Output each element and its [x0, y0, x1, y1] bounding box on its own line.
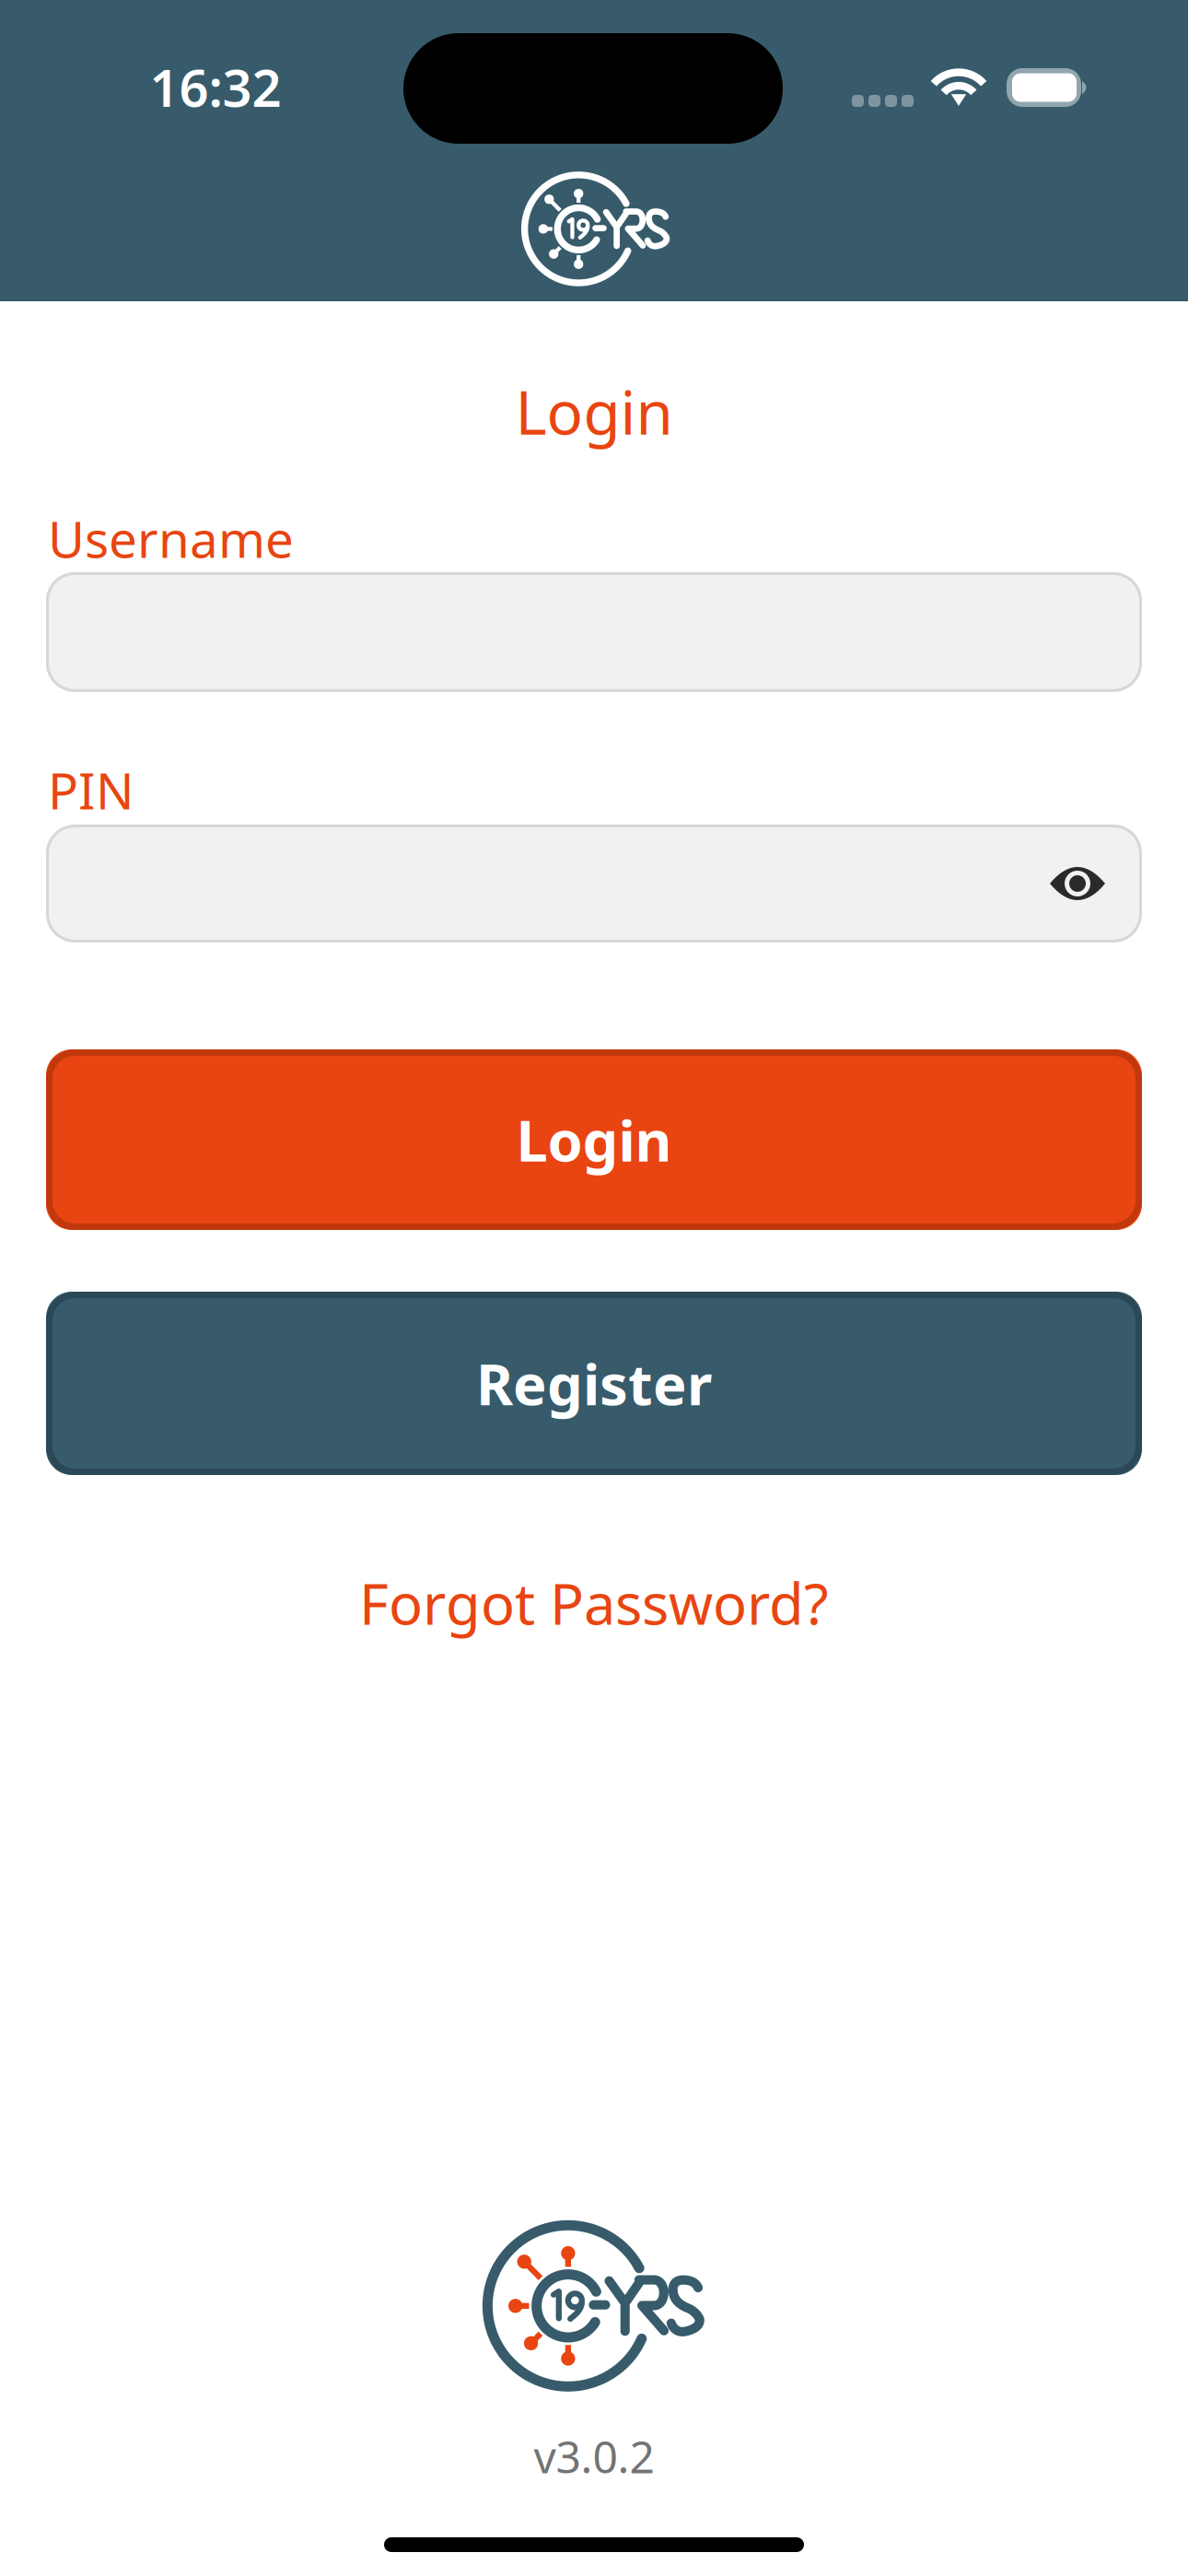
staticText: Register: [476, 1346, 712, 1421]
staticText: PIN: [48, 756, 134, 823]
staticText: Login: [516, 1102, 672, 1177]
staticText: Username: [48, 505, 294, 572]
staticText: Login: [515, 371, 673, 451]
button[interactable]: Register: [46, 1292, 1142, 1475]
button[interactable]: Login: [46, 1049, 1142, 1230]
staticText: 16:32: [150, 53, 281, 121]
button[interactable]: Forgot Password?: [0, 1565, 1188, 1640]
staticText: Forgot Password?: [359, 1565, 829, 1640]
button[interactable]: Show PIN: [1049, 830, 1142, 937]
staticText: v3.0.2: [534, 2427, 654, 2485]
